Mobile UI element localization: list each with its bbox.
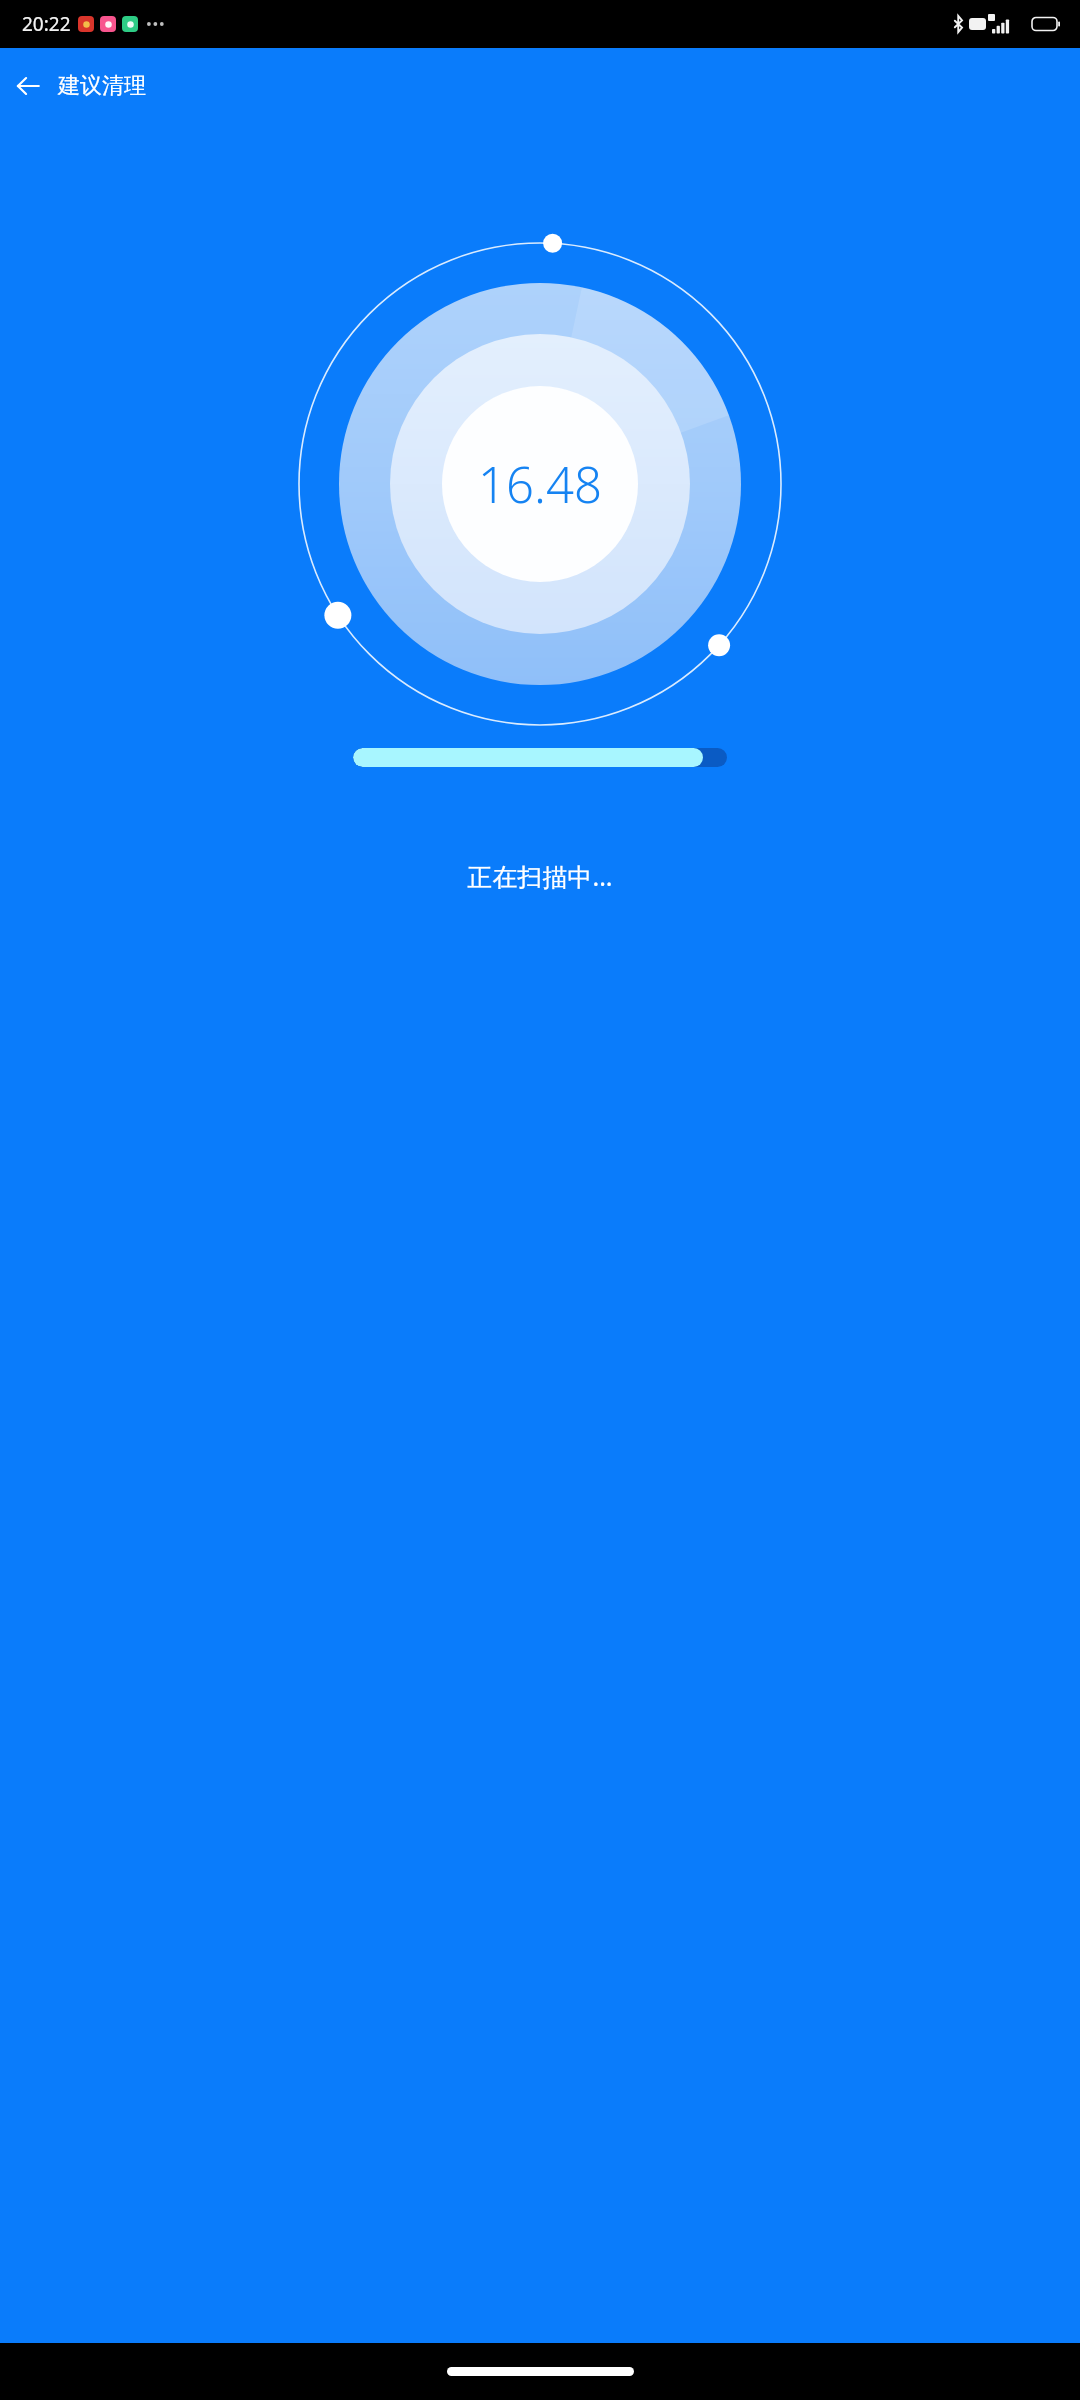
staticText: 正在扫描中... — [467, 859, 613, 893]
staticText: 20:22 — [22, 11, 71, 37]
staticText: 16.48 — [478, 451, 602, 518]
button[interactable]: Back — [0, 58, 56, 114]
button[interactable] — [353, 748, 727, 767]
staticText: 建议清理 — [58, 72, 146, 100]
button[interactable]: Home gesture bar — [447, 2367, 634, 2376]
